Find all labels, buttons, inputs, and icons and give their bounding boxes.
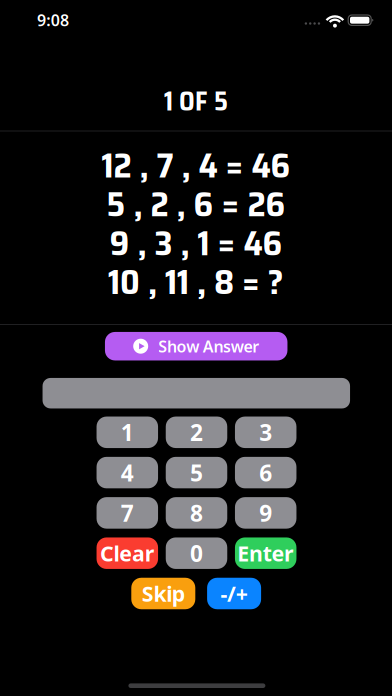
button[interactable]: 1 [96, 417, 158, 448]
staticText: 9:08 [37, 9, 69, 31]
staticText: 0 [190, 538, 203, 568]
staticText: Show Answer [158, 336, 259, 357]
staticText: 9 [259, 498, 272, 528]
staticText: 2 [190, 417, 203, 447]
staticText: -/+ [220, 579, 248, 608]
button[interactable]: Clear [96, 537, 158, 569]
button[interactable]: 2 [166, 417, 227, 448]
button[interactable]: Answer [43, 378, 350, 408]
button[interactable]: 3 [235, 417, 296, 448]
button[interactable]: 0 [166, 537, 227, 569]
button[interactable]: Show Answer [105, 332, 287, 360]
staticText: 5 , 2 , 6 = 26 [106, 177, 285, 232]
button[interactable]: -/+ [207, 578, 261, 609]
staticText: 10 , 11 , 8 = ? [108, 255, 284, 309]
staticText: 3 [259, 417, 272, 447]
staticText: 1 [121, 417, 134, 447]
staticText: Clear [100, 539, 155, 567]
staticText: 7 [121, 498, 134, 528]
staticText: 8 [190, 498, 203, 528]
staticText: Enter [237, 539, 294, 567]
staticText: 9 , 3 , 1 = 46 [109, 216, 282, 270]
button[interactable]: 9 [235, 497, 296, 529]
button[interactable]: Enter [235, 537, 296, 569]
button[interactable]: 6 [235, 457, 296, 488]
button[interactable]: 4 [96, 457, 158, 488]
staticText: 5 [190, 457, 203, 488]
staticText: 4 [121, 457, 134, 488]
button[interactable]: 5 [166, 457, 227, 488]
staticText: 1 OF 5 [164, 81, 228, 122]
button[interactable]: Skip [131, 578, 195, 609]
button[interactable]: 8 [166, 497, 227, 529]
staticText: Skip [142, 579, 185, 608]
staticText: 6 [259, 457, 272, 488]
button[interactable]: 7 [96, 497, 158, 529]
staticText: 12 , 7 , 4 = 46 [101, 138, 290, 193]
